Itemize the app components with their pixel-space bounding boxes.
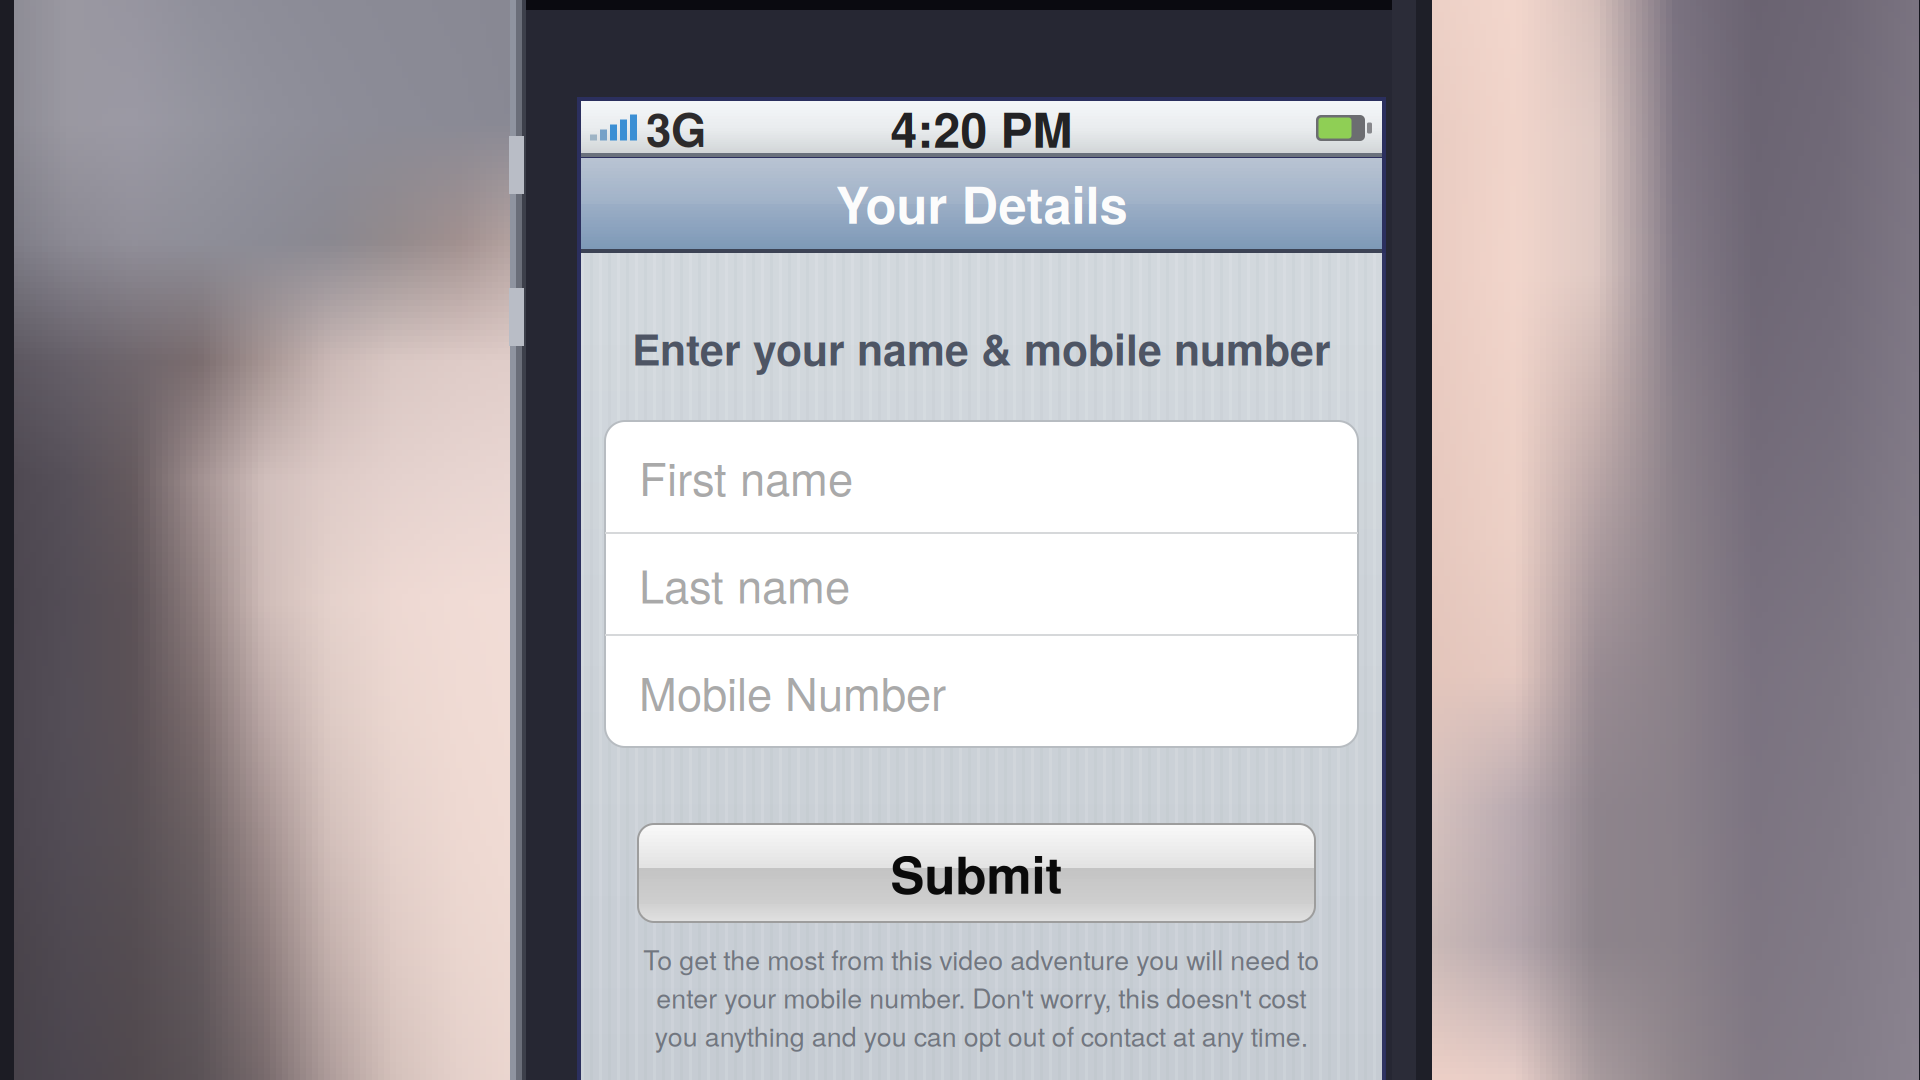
staticText: To get the most from this video adventur… [643,940,1319,1054]
staticText: First name [639,444,853,509]
staticText: 3G [646,95,706,160]
button[interactable]: First name [605,421,1358,532]
staticText: Submit [890,837,1062,909]
button[interactable]: Submit [638,824,1315,922]
staticText: Mobile Number [639,659,946,724]
staticText: 4:20 PM [890,94,1072,162]
staticText: Last name [639,551,850,616]
staticText: Enter your name & mobile number [632,317,1331,379]
button[interactable]: Last name [605,534,1358,634]
staticText: Your Details [835,167,1127,239]
button[interactable]: Mobile Number [605,636,1358,747]
